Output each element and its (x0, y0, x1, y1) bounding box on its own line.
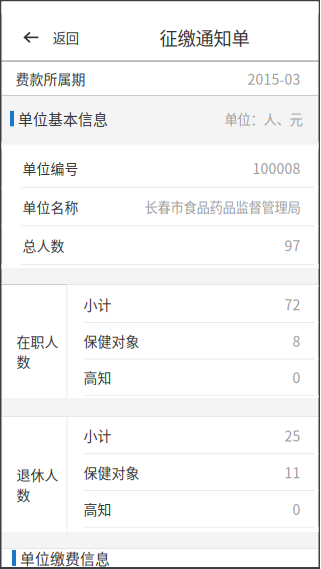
staticText: 0 (292, 367, 300, 387)
staticText: 征缴通知单 (160, 24, 250, 51)
staticText: 小计 (83, 425, 111, 445)
button[interactable]: 小计 (67, 286, 318, 322)
button[interactable]: 高知 (67, 491, 318, 527)
staticText: 2015-03 (247, 68, 300, 89)
staticText: 单位编号 (22, 158, 78, 178)
button[interactable]: 费款所属期 (1, 62, 318, 95)
staticText: 单位基本信息 (18, 108, 108, 129)
staticText: 小计 (83, 294, 111, 314)
staticText: 在职人数 (16, 331, 58, 371)
staticText: 单位：人、元 (224, 109, 302, 128)
button[interactable]: 小计 (67, 417, 318, 453)
staticText: 0 (292, 499, 300, 519)
button[interactable]: 总人数 (1, 226, 318, 264)
staticText: 高知 (83, 367, 111, 387)
staticText: 97 (284, 235, 300, 255)
button[interactable]: 高知 (67, 359, 318, 395)
staticText: 单位名称 (22, 197, 78, 217)
staticText: 保健对象 (83, 331, 139, 351)
button[interactable]: 返回 (1, 14, 91, 61)
button[interactable]: 保健对象 (67, 323, 318, 358)
staticText: 单位缴费信息 (20, 547, 110, 569)
staticText: 返回 (53, 28, 79, 47)
button[interactable]: 单位编号 (1, 149, 318, 187)
staticText: 保健对象 (83, 462, 139, 482)
staticText: 长春市食品药品监督管理局 (144, 197, 300, 216)
staticText: 100008 (252, 158, 300, 178)
staticText: 费款所属期 (15, 68, 85, 89)
button[interactable]: 单位名称 (1, 188, 318, 225)
staticText: 8 (292, 331, 300, 351)
staticText: 11 (284, 462, 300, 482)
staticText: 退休人数 (16, 464, 58, 505)
staticText: 72 (284, 294, 300, 314)
staticText: 25 (284, 425, 300, 445)
staticText: 总人数 (22, 235, 64, 255)
button[interactable]: 保健对象 (67, 454, 318, 490)
staticText: 高知 (83, 499, 111, 519)
